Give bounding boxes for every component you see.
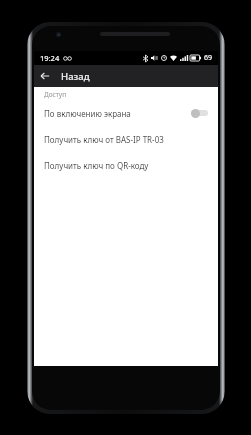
- staticText: Назад: [61, 70, 90, 83]
- staticText: Получить ключ по QR-коду: [44, 160, 149, 171]
- button[interactable]: По включению экрана: [34, 102, 218, 124]
- staticText: 69: [204, 53, 213, 63]
- staticText: Получить ключ от BAS-IP TR-03: [44, 134, 164, 145]
- staticText: По включению экрана: [44, 108, 191, 119]
- button[interactable]: Получить ключ от BAS-IP TR-03: [34, 128, 218, 150]
- staticText: Доступ: [44, 90, 67, 99]
- button[interactable]: Получить ключ по QR-коду: [34, 154, 218, 176]
- staticText: 19:24: [40, 53, 60, 63]
- button[interactable]: Назад: [34, 65, 56, 87]
